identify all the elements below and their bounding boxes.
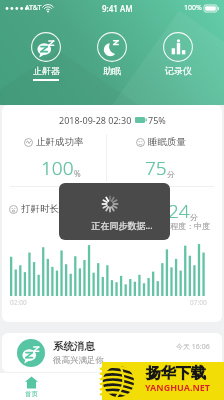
staticText: 02:00 [10, 298, 27, 307]
button[interactable]: 系统消息 [2, 333, 222, 372]
staticText: 助眠 [103, 65, 121, 76]
staticText: 止鼾成功率 [36, 136, 84, 148]
staticText: 75% [148, 114, 166, 126]
staticText: 止鼾器 [33, 65, 60, 76]
button[interactable]: 首页 [25, 376, 38, 398]
staticText: 记录仪 [165, 65, 192, 76]
staticText: 07:00 [190, 298, 207, 307]
button[interactable]: 记录仪 [163, 32, 193, 81]
staticText: 今天 16:06 [176, 342, 210, 352]
staticText: 正在同步数据... [91, 219, 153, 231]
staticText: 分 [167, 169, 175, 179]
staticText: AT&T [25, 3, 42, 13]
staticText: 75 [145, 155, 167, 181]
staticText: 鼾声程度：中度 [154, 221, 210, 231]
staticText: 9:41 AM [102, 3, 133, 14]
button[interactable]: 止鼾器 [31, 32, 61, 81]
staticText: 分 [190, 212, 198, 222]
staticText: 睡眠质量 [148, 136, 186, 148]
staticText: 打鼾时长 [21, 203, 59, 215]
staticText: YANGHUA.NET [145, 381, 211, 393]
staticText: 100 [41, 155, 74, 181]
staticText: 2018-09-28 02:30 [59, 114, 132, 126]
staticText: 很高兴满足你 [53, 355, 104, 366]
staticText: 系统消息 [53, 340, 95, 353]
staticText: 首页 [25, 390, 38, 398]
staticText: % [74, 168, 81, 179]
staticText: 100% [184, 3, 202, 13]
button[interactable]: 助眠 [97, 32, 127, 81]
staticText: 24 [168, 198, 190, 224]
staticText: 扬华下载 [146, 364, 206, 383]
staticText: 1 [141, 198, 152, 224]
